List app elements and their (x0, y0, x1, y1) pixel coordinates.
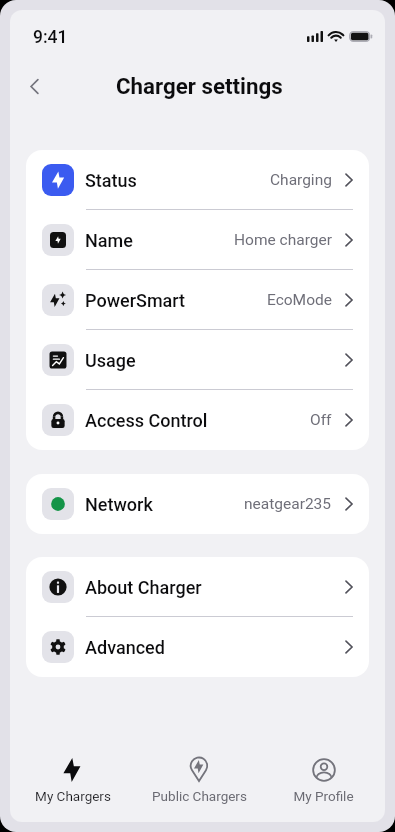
staticText: Usage (85, 350, 136, 371)
button[interactable]: PowerSmart (26, 270, 369, 330)
button[interactable]: Public Chargers (136, 758, 262, 804)
staticText: Charging (270, 171, 332, 189)
staticText: About Charger (85, 577, 202, 598)
staticText: Network (85, 494, 153, 515)
staticText: Name (85, 230, 133, 251)
button[interactable]: Network (26, 474, 369, 534)
button[interactable]: Advanced (26, 617, 369, 677)
button[interactable]: Name (26, 210, 369, 270)
staticText: Advanced (85, 637, 165, 658)
staticText: PowerSmart (85, 290, 186, 311)
staticText: EcoMode (267, 291, 332, 309)
staticText: Home charger (234, 231, 332, 249)
button[interactable]: Access Control (26, 390, 369, 450)
staticText: Public Chargers (152, 788, 247, 804)
button[interactable]: Usage (26, 330, 369, 390)
button[interactable]: My Chargers (10, 758, 136, 804)
staticText: neatgear235 (244, 495, 332, 513)
staticText: 9:41 (33, 27, 68, 48)
staticText: Off (310, 411, 332, 429)
button[interactable]: My Profile (262, 758, 385, 804)
staticText: Charger settings (116, 73, 283, 99)
button[interactable]: Status (26, 150, 369, 210)
staticText: My Chargers (35, 788, 111, 804)
staticText: Access Control (85, 410, 208, 431)
staticText: Status (85, 170, 137, 191)
button[interactable]: Back (14, 66, 54, 106)
button[interactable]: About Charger (26, 557, 369, 617)
staticText: My Profile (293, 788, 354, 804)
